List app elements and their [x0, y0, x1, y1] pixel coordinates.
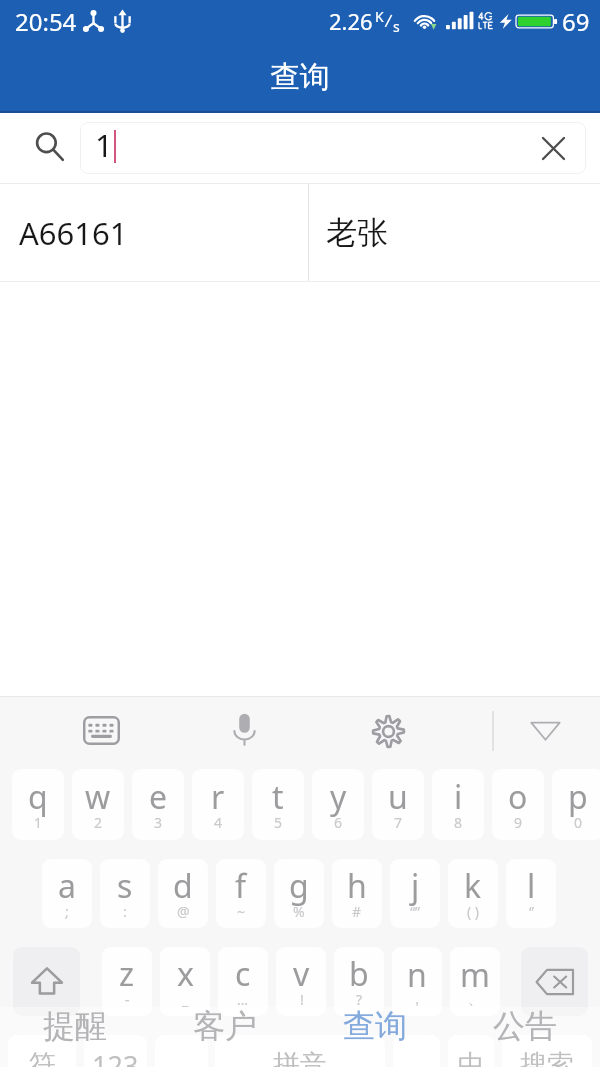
button[interactable]: y — [312, 769, 364, 840]
button[interactable]: 1 — [80, 122, 586, 174]
button[interactable]: x — [160, 947, 210, 1016]
staticText: v — [293, 952, 310, 996]
button[interactable]: f — [216, 859, 266, 928]
staticText: s — [117, 864, 133, 908]
staticText: # — [352, 902, 362, 921]
staticText: w — [85, 775, 111, 819]
staticText: ; — [65, 902, 69, 921]
button[interactable]: z — [102, 947, 152, 1016]
staticText: o — [508, 775, 528, 819]
button[interactable]: Clear — [529, 124, 577, 172]
button[interactable]: Keyboard layout — [75, 704, 127, 756]
staticText: 7 — [394, 813, 403, 832]
button[interactable]: p — [552, 769, 600, 840]
staticText: 搜索 — [520, 1048, 574, 1067]
staticText: 2 — [94, 813, 103, 832]
staticText: - — [125, 990, 130, 1009]
button[interactable]: i — [432, 769, 484, 840]
staticText: ‘’ — [529, 902, 534, 921]
button[interactable]: e — [132, 769, 184, 840]
button[interactable]: Backspace — [521, 947, 588, 1016]
button[interactable]: A66161 — [0, 183, 600, 282]
staticText: 123 — [92, 1047, 139, 1067]
button[interactable]: v — [276, 947, 326, 1016]
button[interactable]: 中 — [448, 1035, 494, 1067]
button[interactable]: k — [448, 859, 498, 928]
button[interactable]: 查询 — [300, 1007, 450, 1067]
staticText: z — [119, 952, 135, 996]
button[interactable]: t — [252, 769, 304, 840]
staticText: 20:54 — [15, 5, 77, 38]
button[interactable]: s — [100, 859, 150, 928]
staticText: c — [235, 952, 251, 996]
button[interactable]: 拼音 — [215, 1035, 385, 1067]
button[interactable]: 123 — [84, 1035, 147, 1067]
button[interactable] — [155, 1035, 208, 1067]
staticText: ~ — [237, 902, 246, 921]
staticText: 中 — [458, 1048, 485, 1067]
button[interactable]: Hide keyboard — [519, 705, 571, 757]
staticText: 9 — [514, 813, 523, 832]
staticText: : — [123, 902, 127, 921]
staticText: A66161 — [19, 212, 128, 254]
button[interactable]: u — [372, 769, 424, 840]
staticText: ( ) — [467, 902, 480, 921]
button[interactable]: a — [42, 859, 92, 928]
button[interactable]: w — [72, 769, 124, 840]
staticText: s — [393, 17, 400, 36]
staticText: i — [454, 775, 463, 819]
staticText: @ — [177, 902, 190, 921]
staticText: 公告 — [493, 1006, 557, 1046]
button[interactable]: 提醒 — [0, 1007, 150, 1067]
staticText: 拼音 — [273, 1048, 327, 1067]
staticText: ? — [356, 990, 363, 1009]
staticText: 提醒 — [43, 1006, 107, 1046]
staticText: g — [289, 864, 309, 908]
staticText: a — [58, 864, 76, 908]
button[interactable]: Search — [25, 122, 73, 170]
button[interactable]: l — [506, 859, 556, 928]
staticText: t — [272, 775, 284, 819]
staticText: k — [464, 864, 482, 908]
staticText: j — [411, 864, 420, 908]
staticText: ， — [410, 991, 424, 1009]
button[interactable]: g — [274, 859, 324, 928]
button[interactable]: Shift — [13, 947, 80, 1016]
staticText: 老张 — [326, 213, 388, 252]
button[interactable]: n — [392, 947, 442, 1016]
staticText: 6 — [334, 813, 343, 832]
staticText: f — [235, 864, 247, 908]
button[interactable]: Voice input — [218, 704, 270, 756]
button[interactable]: 搜索 — [502, 1035, 592, 1067]
button[interactable]: Settings — [362, 705, 414, 757]
staticText: p — [568, 775, 588, 819]
staticText: x — [177, 952, 194, 996]
button[interactable]: j — [390, 859, 440, 928]
staticText: K — [375, 7, 384, 26]
button[interactable] — [393, 1035, 440, 1067]
button[interactable]: 符 — [8, 1035, 76, 1067]
staticText: l — [527, 864, 536, 908]
button[interactable]: h — [332, 859, 382, 928]
staticText: u — [388, 775, 408, 819]
staticText: 3 — [154, 813, 163, 832]
staticText: 0 — [574, 813, 583, 832]
button[interactable]: 客户 — [150, 1007, 300, 1067]
button[interactable]: 公告 — [450, 1007, 600, 1067]
staticText: ! — [300, 990, 304, 1009]
staticText: m — [460, 953, 490, 997]
staticText: 1 — [95, 124, 113, 166]
button[interactable]: q — [12, 769, 64, 840]
staticText: 查询 — [343, 1006, 407, 1046]
button[interactable]: b — [334, 947, 384, 1016]
button[interactable]: o — [492, 769, 544, 840]
button[interactable]: d — [158, 859, 208, 928]
button[interactable]: c — [218, 947, 268, 1016]
staticText: 8 — [454, 813, 463, 832]
button[interactable]: m — [450, 947, 500, 1016]
staticText: … — [237, 990, 249, 1009]
staticText: r — [211, 775, 225, 819]
staticText: b — [349, 952, 369, 996]
button[interactable]: r — [192, 769, 244, 840]
staticText: % — [293, 902, 305, 921]
